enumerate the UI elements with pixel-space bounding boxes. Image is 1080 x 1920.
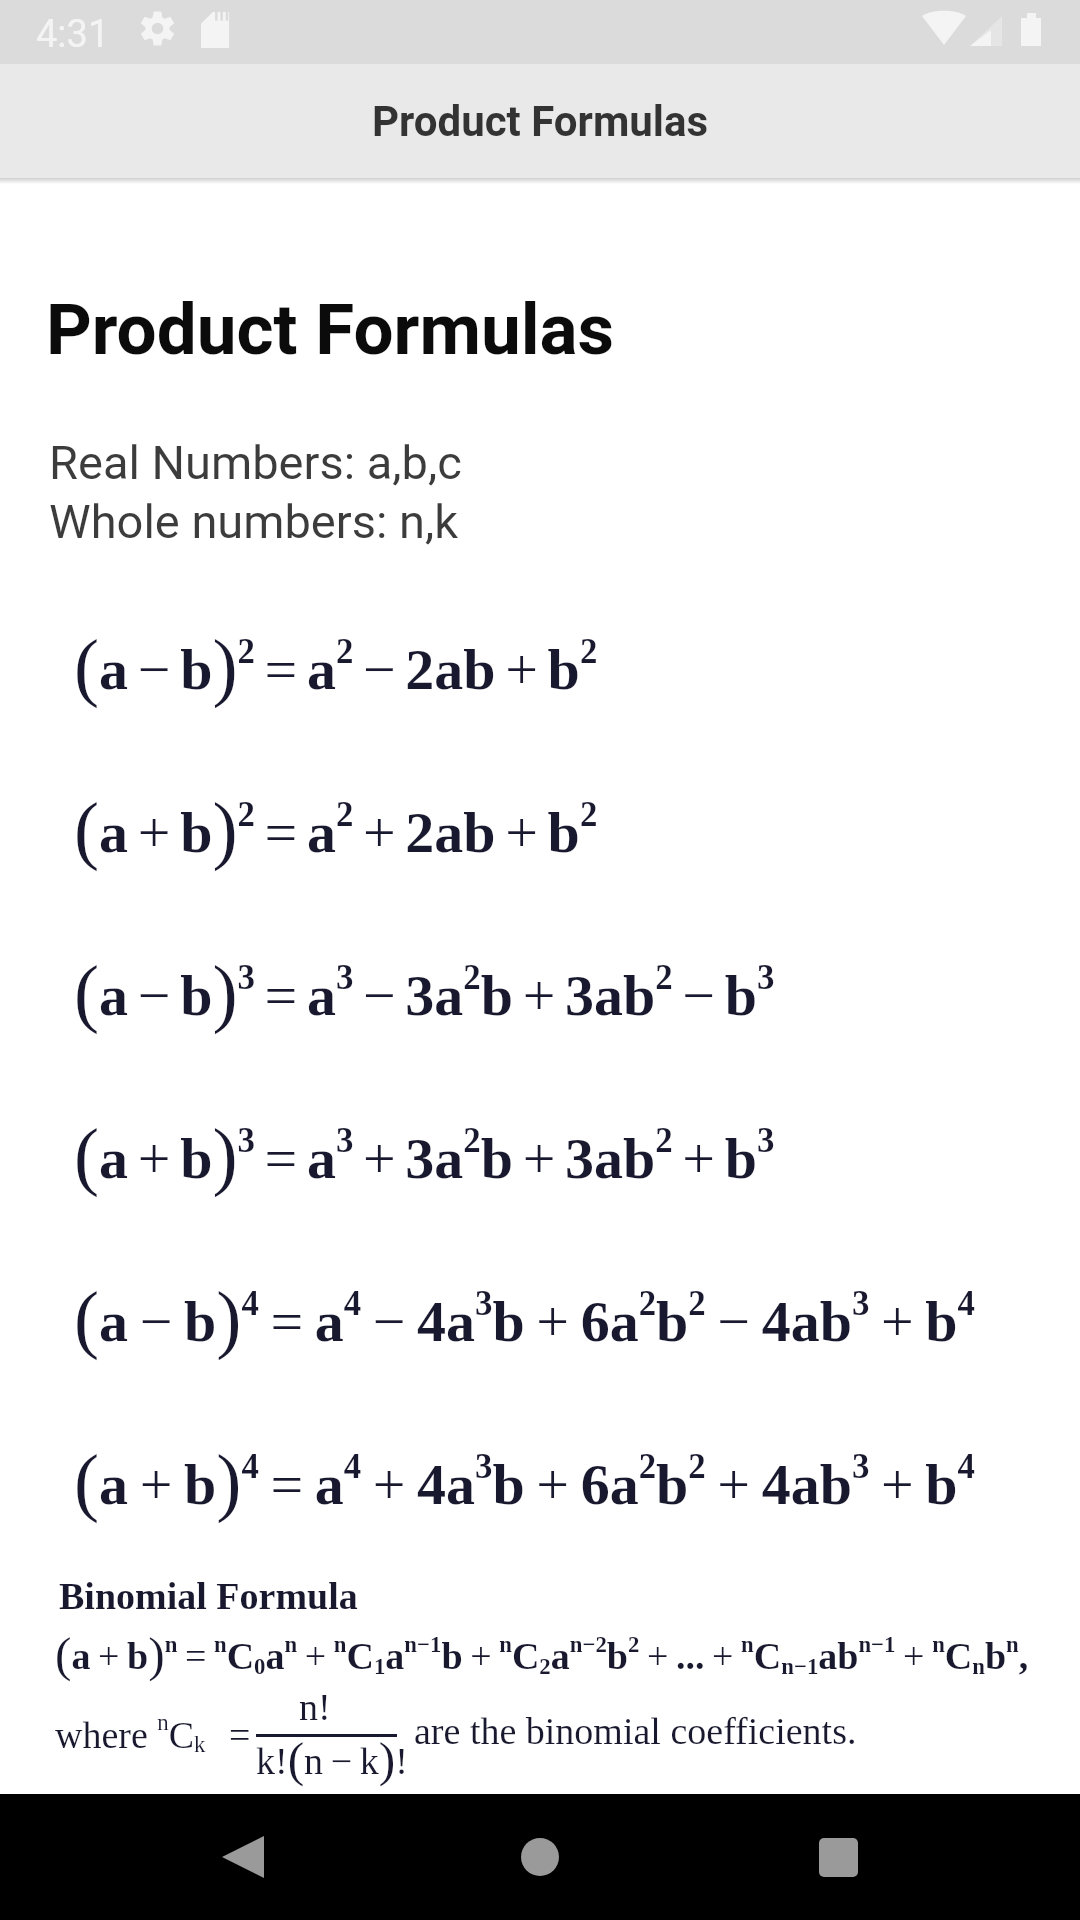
staticText: where nCk = [55, 1710, 258, 1757]
button[interactable]: (a + b)2 = a2 + 2ab + b2 [74, 788, 598, 871]
button[interactable]: Back [188, 1802, 298, 1912]
staticText: Binomial Formula [59, 1575, 358, 1617]
button[interactable]: Home [485, 1802, 595, 1912]
staticText: Product Formulas [46, 288, 615, 371]
staticText: (a + b)n = nC0an + nC1an−1b + nC2an−2b2 … [55, 1627, 1029, 1682]
button[interactable]: Recent apps [783, 1802, 893, 1912]
staticText: (a − b)2 = a2 − 2ab + b2 [74, 625, 598, 708]
button[interactable]: Product Formulas [0, 64, 1080, 178]
staticText: (a + b)3 = a3 + 3a2b + 3ab2 + b3 [74, 1114, 775, 1197]
staticText: Real Numbers: a,b,c Whole numbers: n,k [49, 435, 462, 549]
button[interactable]: (a − b)3 = a3 − 3a2b + 3ab2 − b3 [74, 951, 775, 1034]
staticText: n! [299, 1686, 331, 1728]
staticText: (a − b)3 = a3 − 3a2b + 3ab2 − b3 [74, 951, 775, 1034]
staticText: (a + b)4 = a4 + 4a3b + 6a2b2 + 4ab3 + b4 [74, 1440, 975, 1523]
button[interactable]: (a − b)4 = a4 − 4a3b + 6a2b2 − 4ab3 + b4 [74, 1277, 975, 1360]
staticText: Product Formulas [372, 97, 709, 146]
staticText: (a + b)2 = a2 + 2ab + b2 [74, 788, 598, 871]
staticText: k!(n − k)! [256, 1732, 408, 1787]
button[interactable]: (a + b)4 = a4 + 4a3b + 6a2b2 + 4ab3 + b4 [74, 1440, 975, 1523]
staticText: (a − b)4 = a4 − 4a3b + 6a2b2 − 4ab3 + b4 [74, 1277, 975, 1360]
button[interactable]: (a + b)3 = a3 + 3a2b + 3ab2 + b3 [74, 1114, 775, 1197]
button[interactable]: (a − b)2 = a2 − 2ab + b2 [74, 625, 598, 708]
staticText: 4:31 [36, 12, 110, 57]
staticText: are the binomial coefficients. [414, 1710, 857, 1752]
